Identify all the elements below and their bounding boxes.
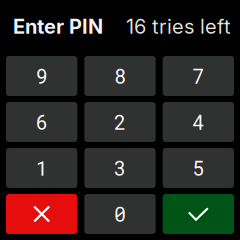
button[interactable]: Confirm [163,194,234,234]
staticText: 2 [114,109,126,135]
button[interactable]: 3 [84,148,156,188]
staticText: 6 [36,109,48,135]
button[interactable]: Cancel [6,194,77,234]
staticText: 8 [114,63,126,89]
button[interactable]: 8 [84,56,156,96]
staticText: 1 [36,155,48,181]
button[interactable]: 1 [6,148,77,188]
staticText: 0 [114,201,126,227]
staticText: 7 [192,63,204,89]
button[interactable]: 6 [6,102,77,142]
staticText: Enter PIN [13,14,103,39]
staticText: 9 [36,63,48,89]
button[interactable]: 0 [84,194,156,234]
staticText: 4 [192,109,204,135]
button[interactable]: 7 [163,56,234,96]
staticText: 16 tries left [126,14,231,39]
button[interactable]: 5 [163,148,234,188]
staticText: 5 [192,155,204,181]
button[interactable]: 2 [84,102,156,142]
button[interactable]: 4 [163,102,234,142]
staticText: 3 [114,155,126,181]
button[interactable]: 9 [6,56,77,96]
